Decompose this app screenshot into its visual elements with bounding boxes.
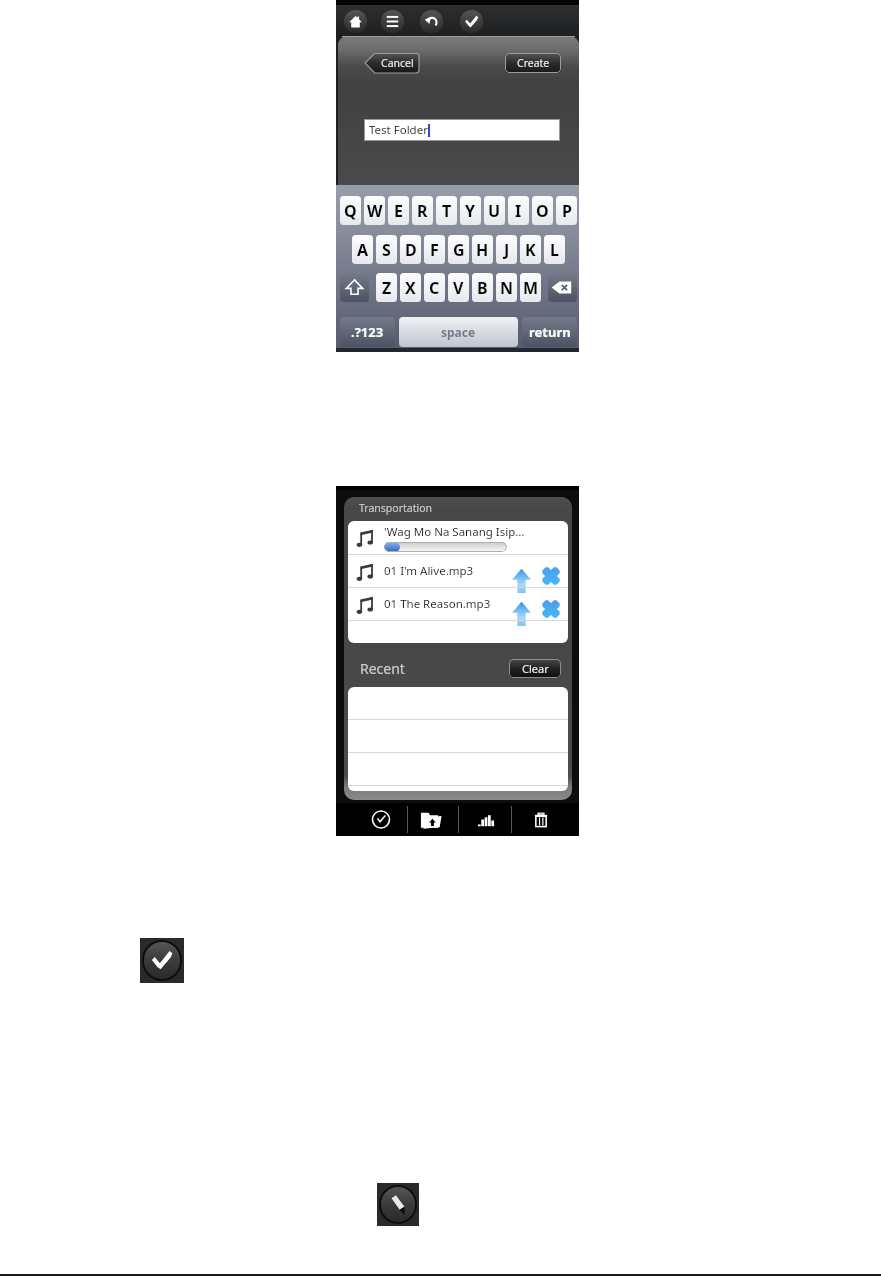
button[interactable]: Select: [369, 807, 393, 832]
staticText: Cancel: [381, 56, 414, 70]
staticText: 'Wag Mo Na Sanang Isip…: [384, 524, 525, 540]
staticText: L: [550, 239, 559, 261]
staticText: P: [562, 200, 572, 222]
staticText: Transportation: [359, 501, 433, 515]
button[interactable]: G: [448, 235, 469, 264]
staticText: Y: [465, 200, 476, 222]
staticText: K: [525, 239, 536, 261]
staticText: E: [394, 200, 403, 222]
button[interactable]: Edit: [377, 1183, 419, 1226]
staticText: M: [523, 277, 539, 299]
button[interactable]: C: [424, 273, 445, 302]
staticText: Test Folder: [369, 122, 428, 138]
button[interactable]: Confirm: [460, 10, 483, 33]
button[interactable]: Delete: [529, 808, 553, 832]
button[interactable]: return: [522, 317, 577, 347]
button[interactable]: M: [520, 273, 541, 302]
staticText: .?123: [351, 323, 384, 341]
button[interactable]: 'Wag Mo Na Sanang Isip…: [348, 521, 568, 554]
staticText: J: [504, 239, 510, 261]
staticText: F: [430, 239, 439, 261]
staticText: Recent: [360, 659, 405, 678]
button[interactable]: H: [472, 235, 493, 264]
button[interactable]: T: [436, 196, 457, 225]
staticText: R: [417, 200, 428, 222]
button[interactable]: Menu: [381, 10, 404, 33]
staticText: 01 The Reason.mp3: [384, 596, 491, 612]
staticText: X: [405, 277, 416, 299]
button[interactable]: Backspace: [548, 273, 577, 302]
button[interactable]: P: [556, 196, 577, 225]
staticText: Q: [344, 200, 357, 222]
button[interactable]: W: [364, 196, 385, 225]
staticText: return: [529, 323, 571, 341]
button[interactable]: A: [352, 235, 373, 264]
staticText: Create: [517, 56, 550, 70]
staticText: T: [442, 200, 452, 222]
staticText: A: [357, 239, 369, 261]
staticText: B: [477, 277, 488, 299]
button[interactable]: Shift: [340, 273, 369, 302]
button[interactable]: Cancel: [365, 53, 419, 73]
button[interactable]: F: [424, 235, 445, 264]
button[interactable]: S: [376, 235, 397, 264]
button[interactable]: J: [496, 235, 517, 264]
button[interactable]: Levels: [474, 808, 498, 832]
staticText: space: [441, 324, 476, 340]
button[interactable]: Y: [460, 196, 481, 225]
button[interactable]: Home: [344, 10, 367, 33]
staticText: U: [488, 200, 501, 222]
staticText: Z: [382, 277, 392, 299]
button[interactable]: B: [472, 273, 493, 302]
button[interactable]: I: [508, 196, 529, 225]
staticText: C: [429, 277, 440, 299]
staticText: 01 I'm Alive.mp3: [384, 563, 474, 579]
staticText: V: [453, 277, 464, 299]
staticText: H: [476, 239, 489, 261]
button[interactable]: D: [400, 235, 421, 264]
button[interactable]: Clear: [509, 659, 561, 678]
staticText: W: [367, 200, 383, 222]
button[interactable]: U: [484, 196, 505, 225]
button[interactable]: Z: [376, 273, 397, 302]
button[interactable]: R: [412, 196, 433, 225]
staticText: S: [382, 239, 391, 261]
button[interactable]: space: [399, 317, 518, 347]
staticText: O: [536, 200, 549, 222]
staticText: Clear: [522, 661, 549, 676]
staticText: N: [500, 277, 514, 299]
staticText: D: [405, 239, 417, 261]
staticText: G: [453, 239, 465, 261]
button[interactable]: K: [520, 235, 541, 264]
button[interactable]: 01 The Reason.mp3: [348, 588, 568, 620]
button[interactable]: E: [388, 196, 409, 225]
button[interactable]: Test Folder: [364, 119, 560, 141]
button[interactable]: Q: [340, 196, 361, 225]
button[interactable]: .?123: [340, 317, 395, 347]
staticText: I: [515, 200, 522, 222]
button[interactable]: Create: [505, 53, 561, 73]
button[interactable]: 01 I'm Alive.mp3: [348, 555, 568, 587]
button[interactable]: N: [496, 273, 517, 302]
button[interactable]: O: [532, 196, 553, 225]
button[interactable]: New folder: [419, 808, 443, 832]
button[interactable]: Confirm: [140, 938, 184, 983]
button[interactable]: L: [544, 235, 565, 264]
button[interactable]: V: [448, 273, 469, 302]
button[interactable]: Undo: [420, 10, 443, 33]
button[interactable]: X: [400, 273, 421, 302]
